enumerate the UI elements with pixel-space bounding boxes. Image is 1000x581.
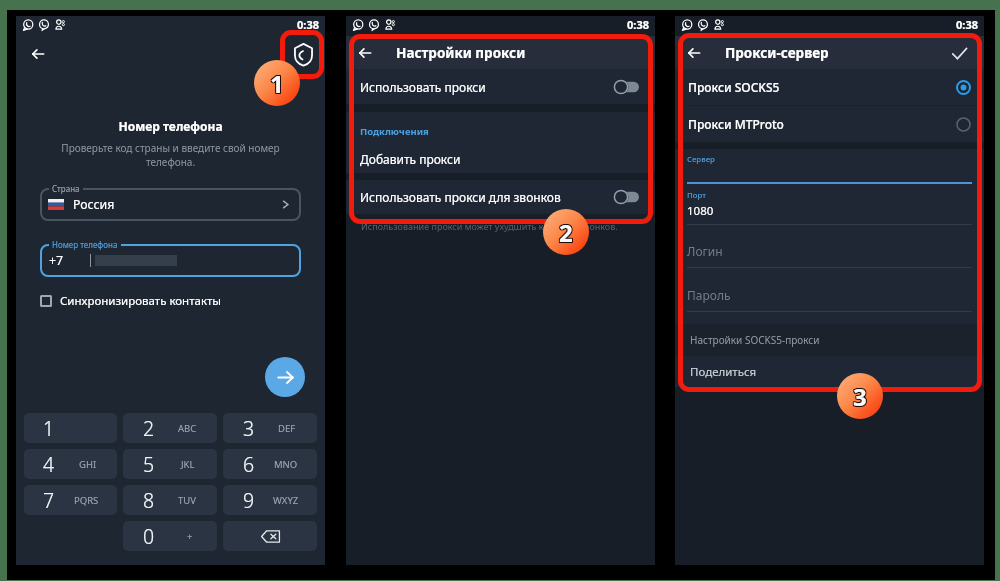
staticText: 3 [853, 381, 867, 414]
button[interactable]: Логин [675, 226, 984, 269]
staticText: Использовать прокси для звонков [360, 189, 561, 205]
staticText: 1 [271, 67, 285, 100]
staticText: 3 [853, 380, 867, 413]
button[interactable]: 6 [223, 449, 317, 479]
staticText: 2 [559, 217, 573, 250]
staticText: 1 [270, 68, 284, 101]
staticText: Номер телефона [52, 239, 118, 250]
staticText: Номер телефона [16, 118, 325, 134]
staticText: Настройки SOCKS5-прокси [690, 333, 820, 347]
staticText: 1 [43, 415, 55, 442]
staticText: ABC [178, 422, 197, 435]
staticText: 2 [559, 215, 573, 248]
button[interactable]: 5 [123, 449, 217, 479]
button[interactable]: Save [947, 41, 971, 65]
staticText: Прокси SOCKS5 [688, 79, 780, 95]
button[interactable]: 1 [24, 413, 117, 443]
button[interactable]: Прокси MTProto [675, 106, 984, 142]
button[interactable]: Back [25, 41, 51, 67]
staticText: 0:38 [297, 17, 319, 32]
staticText: + [187, 530, 193, 543]
staticText: 2 [560, 217, 574, 250]
button[interactable]: 4 [24, 449, 117, 479]
button[interactable]: 2 [123, 413, 217, 443]
button[interactable]: Proxy settings [288, 39, 318, 69]
staticText: 2 [143, 415, 155, 442]
staticText: Прокси-сервер [725, 44, 829, 62]
button[interactable]: 8 [123, 485, 217, 515]
button[interactable]: Back [681, 40, 707, 66]
staticText: DEF [278, 422, 296, 435]
staticText: Сервер [687, 154, 715, 165]
staticText: Добавить прокси [360, 151, 461, 167]
staticText: Пароль [687, 287, 731, 303]
staticText: 7 [43, 487, 55, 514]
staticText: 4 [43, 451, 55, 478]
button[interactable]: Сервер [675, 149, 984, 185]
staticText: 3 [852, 379, 866, 412]
button[interactable]: 7 [24, 485, 117, 515]
staticText: Подключения [360, 125, 429, 138]
staticText: 6 [243, 451, 255, 478]
button[interactable]: Поделиться [675, 356, 984, 387]
staticText: PQRS [74, 494, 99, 507]
staticText: Использовать прокси [360, 79, 486, 95]
staticText: 1 [269, 67, 283, 100]
button[interactable]: Настройки SOCKS5-прокси [675, 324, 984, 356]
staticText: 2 [558, 216, 572, 249]
staticText: 2 [558, 217, 572, 250]
staticText: WXYZ [273, 494, 299, 507]
staticText: GHI [79, 458, 97, 471]
button[interactable]: 3 [223, 413, 317, 443]
button[interactable]: Добавить прокси [346, 147, 655, 171]
staticText: 1 [271, 68, 285, 101]
staticText: 0 [143, 523, 155, 550]
staticText: JKL [181, 458, 195, 471]
button[interactable]: Прокси SOCKS5 [675, 69, 984, 105]
button[interactable]: Синхронизировать контакты [40, 290, 222, 312]
staticText: 3 [243, 415, 255, 442]
staticText: 1 [269, 66, 283, 99]
staticText: Поделиться [690, 364, 757, 380]
staticText: 1 [271, 66, 285, 99]
staticText: MNO [274, 458, 298, 471]
staticText: 1080 [687, 203, 714, 219]
staticText: Использование прокси может ухудшить каче… [361, 220, 618, 232]
staticText: 2 [559, 216, 573, 249]
staticText: Проверьте код страны и введите свой номе… [49, 141, 292, 169]
button[interactable]: Использовать прокси для звонков [346, 180, 655, 214]
staticText: 0:38 [627, 17, 649, 32]
button[interactable]: Использовать прокси [346, 69, 655, 104]
button[interactable]: Backspace [223, 521, 317, 551]
staticText: TUV [178, 494, 196, 507]
staticText: 3 [852, 380, 866, 413]
staticText: Страна [52, 183, 80, 194]
button[interactable]: Next [265, 357, 305, 397]
staticText: 3 [854, 379, 868, 412]
staticText: 1 [269, 68, 283, 101]
button[interactable]: Back [352, 40, 378, 66]
button[interactable]: 0 [123, 521, 217, 551]
staticText: Синхронизировать контакты [60, 293, 222, 309]
staticText: 2 [560, 216, 574, 249]
staticText: 8 [143, 487, 155, 514]
staticText: +7 [49, 252, 64, 269]
staticText: 2 [558, 215, 572, 248]
button[interactable]: Пароль [675, 269, 984, 313]
staticText: 9 [243, 487, 255, 514]
staticText: 3 [853, 379, 867, 412]
button[interactable]: 9 [223, 485, 317, 515]
staticText: 3 [854, 380, 868, 413]
staticText: Россия [73, 196, 115, 213]
staticText: 0:38 [956, 17, 978, 32]
staticText: 1 [270, 66, 284, 99]
staticText: Логин [687, 243, 723, 259]
staticText: 3 [852, 381, 866, 414]
staticText: Прокси MTProto [688, 116, 784, 132]
staticText: Настройки прокси [396, 44, 526, 62]
button[interactable]: Порт [675, 185, 984, 226]
staticText: 2 [560, 215, 574, 248]
staticText: 5 [143, 451, 155, 478]
staticText: 3 [854, 381, 868, 414]
staticText: 1 [270, 67, 284, 100]
